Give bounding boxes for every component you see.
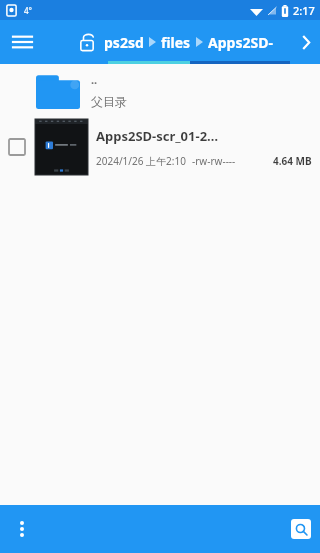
- button[interactable]: ps2sd: [104, 20, 292, 64]
- staticText: 2024/1/26 上午2:10: [96, 154, 186, 168]
- button[interactable]: Storage unlocked: [74, 20, 100, 64]
- staticText: Apps2SD-scr_01-2…24_02_09_56.mp4: [96, 127, 312, 145]
- staticText: ..: [91, 72, 98, 87]
- button[interactable]: Search: [291, 519, 311, 539]
- button[interactable]: More options: [0, 505, 44, 553]
- staticText: 2:17: [293, 3, 315, 18]
- button[interactable]: Scroll path forward: [292, 20, 320, 64]
- button[interactable]: ..: [0, 64, 320, 117]
- button[interactable]: Select file: [0, 130, 34, 164]
- staticText: 4.64 MB: [273, 154, 312, 168]
- button[interactable]: Open navigation menu: [0, 20, 44, 64]
- button[interactable]: Select file: [0, 117, 320, 177]
- staticText: 父目录: [91, 94, 127, 109]
- staticText: Apps2SD-SCR: [208, 33, 292, 52]
- staticText: 4°: [24, 5, 32, 16]
- staticText: ps2sd: [104, 33, 144, 52]
- staticText: files: [161, 33, 191, 52]
- staticText: -rw-rw----: [192, 154, 236, 168]
